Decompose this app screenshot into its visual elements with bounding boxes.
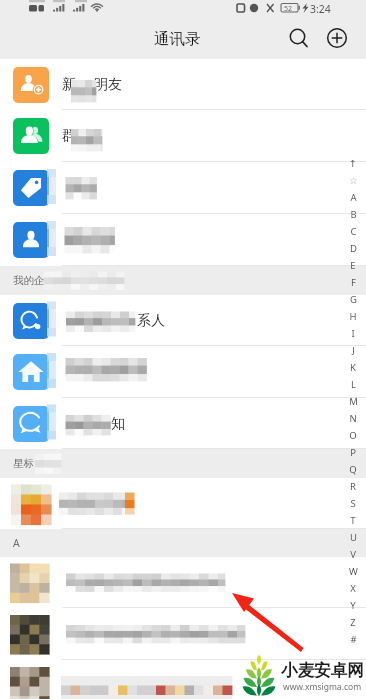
staticText: A (13, 536, 20, 550)
button[interactable]: Search (286, 25, 312, 51)
staticText: ☆ (349, 175, 358, 186)
button[interactable] (0, 557, 366, 608)
staticText: D (350, 242, 357, 255)
staticText: T (350, 514, 356, 527)
staticText: # (350, 633, 357, 646)
staticText: S (350, 497, 356, 510)
staticText: L (351, 378, 356, 391)
button[interactable]: 知 (0, 398, 366, 449)
staticText: 新 (62, 76, 76, 94)
staticText: J (352, 344, 355, 357)
staticText: Z (350, 616, 356, 629)
staticText: 明友 (94, 76, 122, 94)
staticText: U (350, 531, 357, 544)
staticText: N (349, 412, 357, 425)
staticText: F (351, 276, 356, 289)
staticText: 系人 (137, 312, 165, 330)
staticText: B (350, 208, 357, 221)
staticText: E (350, 259, 356, 272)
button[interactable] (0, 660, 366, 699)
staticText: K (350, 361, 356, 374)
button[interactable] (0, 346, 366, 398)
staticText: I (351, 327, 355, 340)
staticText: Y (350, 599, 356, 612)
staticText: W (349, 565, 358, 578)
button[interactable] (0, 162, 366, 214)
staticText: H (349, 310, 357, 323)
staticText: V (350, 548, 356, 561)
staticText: 群 (62, 127, 76, 145)
staticText: 小麦安卓网 (281, 660, 364, 681)
staticText: A (350, 191, 357, 204)
button[interactable]: 新 (0, 59, 366, 110)
staticText: 52 (284, 4, 293, 14)
staticText: 知 (111, 415, 125, 433)
staticText: ↑ (349, 158, 357, 169)
staticText: www.xmsigma.com (283, 681, 362, 693)
staticText: P (350, 446, 356, 459)
button[interactable] (0, 478, 366, 529)
button[interactable] (0, 214, 366, 266)
staticText: R (350, 480, 356, 493)
staticText: M (349, 395, 358, 408)
staticText: 3:24 (310, 2, 331, 16)
button[interactable]: Alphabet index (343, 155, 363, 648)
button[interactable]: 系人 (0, 295, 366, 346)
button[interactable]: 群 (0, 110, 366, 162)
staticText: 我的企业 (13, 274, 55, 287)
staticText: O (349, 429, 357, 442)
staticText: 星标 (13, 457, 34, 470)
staticText: G (350, 293, 357, 306)
button[interactable]: Add contact (324, 25, 350, 51)
staticText: C (350, 225, 357, 238)
staticText: X (350, 582, 356, 595)
staticText: Q (349, 463, 357, 476)
button[interactable] (0, 608, 366, 660)
staticText: 通讯录 (154, 29, 201, 49)
